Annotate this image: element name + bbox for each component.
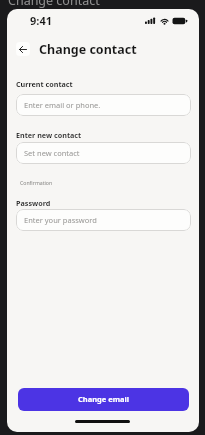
staticText: Change email — [78, 394, 129, 404]
staticText: Current contact — [16, 79, 73, 89]
button[interactable]: Enter your password — [16, 209, 191, 231]
staticText: Change contact — [8, 0, 100, 9]
staticText: Confirmation — [20, 179, 53, 186]
button[interactable]: Change email — [18, 388, 189, 411]
staticText: Enter new contact — [16, 130, 82, 140]
button[interactable] — [16, 42, 30, 56]
button[interactable]: Enter email or phone. — [16, 94, 191, 116]
staticText: Enter email or phone. — [24, 100, 101, 110]
staticText: Password — [16, 198, 51, 208]
staticText: Enter your password — [24, 215, 97, 225]
staticText: Set new contact — [24, 148, 80, 158]
staticText: Change contact — [39, 41, 137, 58]
staticText: 9:41 — [30, 13, 52, 28]
button[interactable]: Set new contact — [16, 142, 191, 164]
